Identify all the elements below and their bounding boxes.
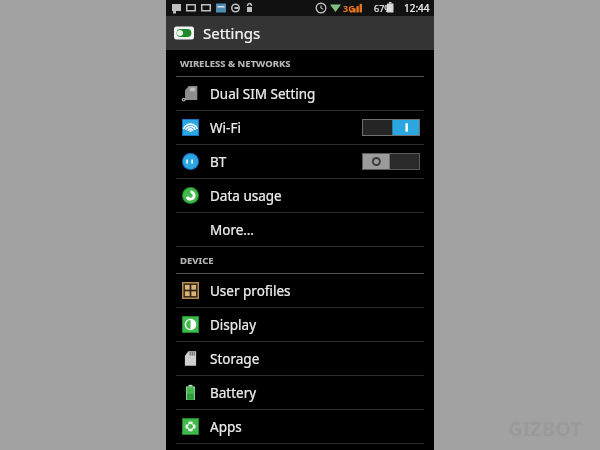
staticText: WIRELESS & NETWORKS — [180, 57, 291, 70]
staticText: Dual SIM Setting — [210, 85, 316, 103]
button[interactable]: Settings — [166, 16, 434, 50]
staticText: Storage — [210, 350, 260, 368]
button[interactable]: Battery — [166, 376, 434, 409]
button[interactable]: Storage — [166, 342, 434, 375]
staticText: Settings — [203, 23, 261, 43]
staticText: 67% — [374, 2, 392, 14]
staticText: 3G — [343, 2, 355, 14]
button[interactable]: User profiles — [166, 274, 434, 307]
staticText: Battery — [210, 384, 257, 402]
button[interactable]: Wi-Fi — [166, 111, 434, 144]
button[interactable]: BT — [166, 145, 434, 178]
staticText: 12:44 — [404, 1, 430, 15]
button[interactable]: Bluetooth off — [362, 153, 420, 170]
staticText: Data usage — [210, 187, 282, 205]
staticText: Wi-Fi — [210, 119, 241, 137]
staticText: GIZBOT — [508, 415, 582, 442]
button[interactable]: More… — [166, 213, 434, 246]
staticText: Display — [210, 316, 257, 334]
button[interactable]: Data usage — [166, 179, 434, 212]
button[interactable]: Wi-Fi on — [362, 119, 420, 136]
button[interactable]: Display — [166, 308, 434, 341]
button[interactable]: Dual SIM Setting — [166, 77, 434, 110]
staticText: More… — [210, 221, 255, 239]
staticText: BT — [210, 153, 227, 171]
staticText: DEVICE — [180, 254, 214, 267]
staticText: Apps — [210, 418, 242, 436]
button[interactable]: Apps — [166, 410, 434, 443]
staticText: User profiles — [210, 282, 291, 300]
